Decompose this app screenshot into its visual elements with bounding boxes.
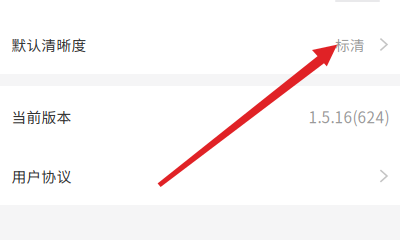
- button[interactable]: 用户协议: [0, 147, 400, 205]
- staticText: 当前版本: [11, 106, 71, 127]
- button[interactable]: 默认清晰度: [0, 15, 400, 74]
- button[interactable]: 当前版本: [0, 86, 400, 147]
- staticText: 默认清晰度: [11, 34, 86, 55]
- staticText: 用户协议: [11, 165, 71, 187]
- staticText: 标清: [335, 34, 365, 55]
- staticText: 1.5.16(624): [308, 105, 389, 128]
